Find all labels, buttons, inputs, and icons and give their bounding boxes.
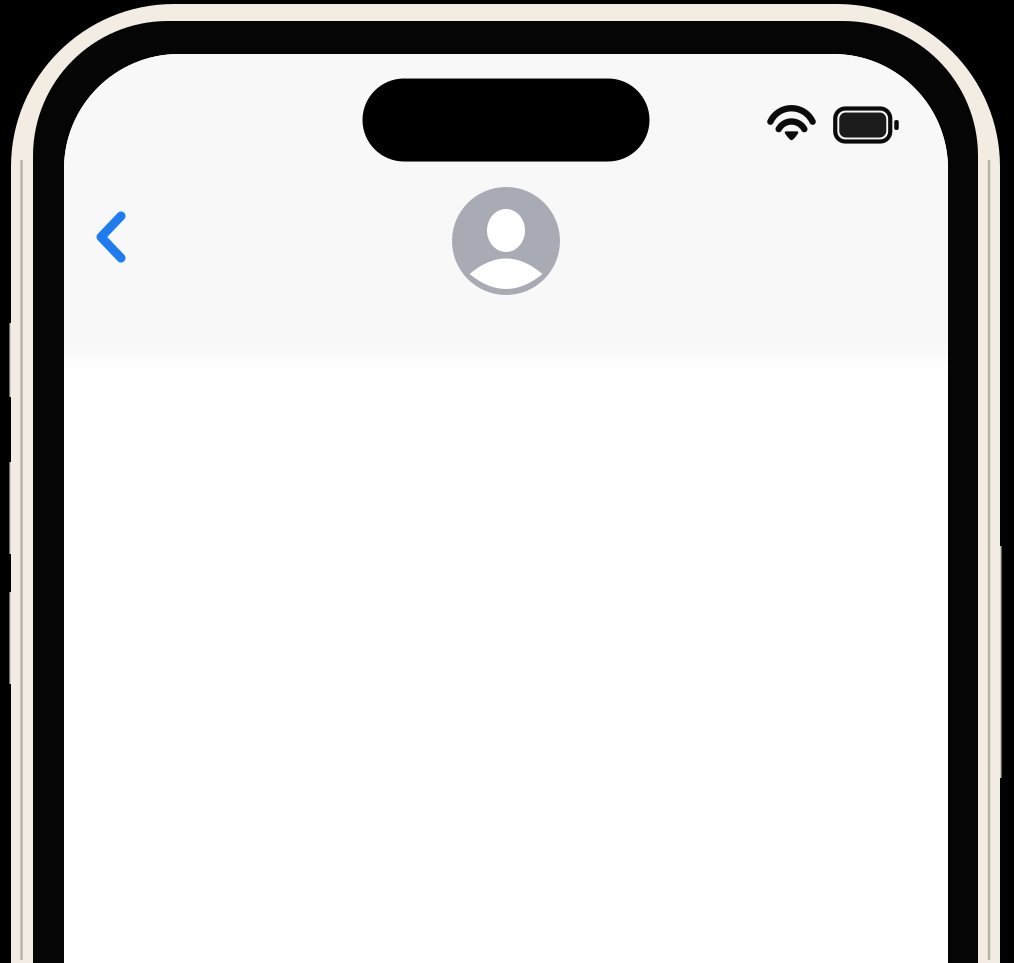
button[interactable]: Back <box>74 187 148 287</box>
